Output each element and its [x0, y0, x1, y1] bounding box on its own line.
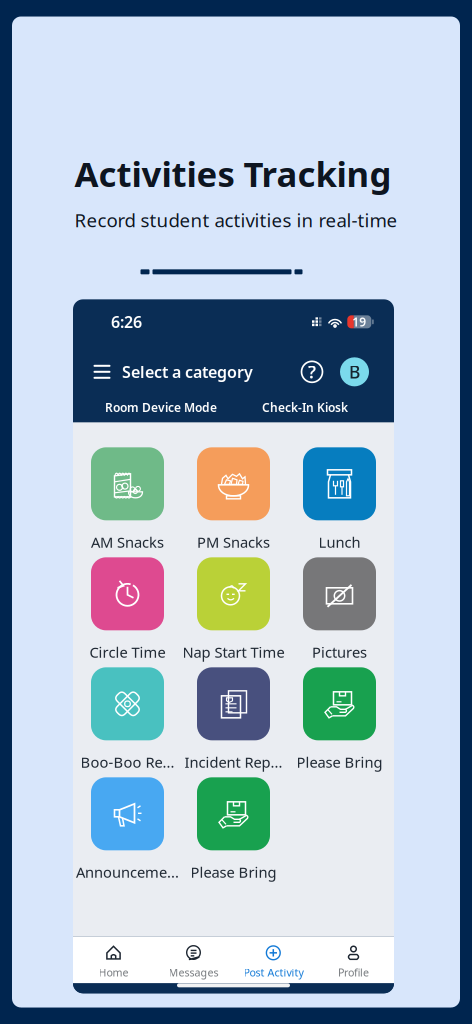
button[interactable]: Messages	[153, 936, 233, 983]
button[interactable]: Incident Rep...	[184, 667, 282, 777]
staticText: PM Snacks	[197, 532, 270, 552]
staticText: Lunch	[318, 532, 360, 552]
staticText: Check-In Kiosk	[262, 399, 348, 415]
button[interactable]: PM Snacks	[184, 447, 282, 557]
staticText: Room Device Mode	[105, 399, 217, 415]
staticText: 19	[352, 314, 366, 330]
button[interactable]: Profile	[313, 936, 393, 983]
button[interactable]: Please Bring	[184, 777, 282, 887]
staticText: Record student activities in real-time	[74, 207, 397, 232]
staticText: Pictures	[312, 642, 367, 662]
button[interactable]: Room Device Mode	[96, 399, 226, 419]
staticText: Nap Start Time	[182, 642, 284, 662]
button[interactable]: Announceme...	[78, 777, 176, 887]
staticText: Incident Rep...	[184, 752, 282, 772]
staticText: ?	[308, 360, 316, 383]
button[interactable]: Pictures	[290, 557, 388, 667]
staticText: Boo-Boo Re...	[80, 752, 174, 772]
button[interactable]: Please Bring	[290, 667, 388, 777]
button[interactable]: Home	[73, 936, 153, 983]
button[interactable]: Help	[301, 360, 323, 384]
button[interactable]: Menu	[91, 357, 113, 387]
staticText: Circle Time	[89, 642, 165, 662]
staticText: 6:26	[111, 311, 142, 332]
staticText: Messages	[168, 965, 218, 979]
staticText: Activities Tracking	[74, 150, 391, 196]
staticText: AM Snacks	[91, 532, 164, 552]
staticText: Announceme...	[76, 862, 179, 882]
staticText: Profile	[338, 965, 369, 979]
staticText: B	[349, 360, 360, 383]
button[interactable]: AM Snacks	[78, 447, 176, 557]
staticText: Home	[98, 965, 128, 979]
staticText: Please Bring	[190, 862, 276, 882]
staticText: Select a category	[122, 361, 253, 382]
staticText: Post Activity	[243, 965, 303, 979]
button[interactable]: Check-In Kiosk	[250, 399, 360, 419]
button[interactable]: Account	[340, 357, 369, 386]
button[interactable]: Nap Start Time	[184, 557, 282, 667]
staticText: Please Bring	[296, 752, 382, 772]
button[interactable]: Post Activity	[233, 936, 313, 983]
button[interactable]: Boo-Boo Re...	[78, 667, 176, 777]
button[interactable]: Circle Time	[78, 557, 176, 667]
button[interactable]: Lunch	[290, 447, 388, 557]
